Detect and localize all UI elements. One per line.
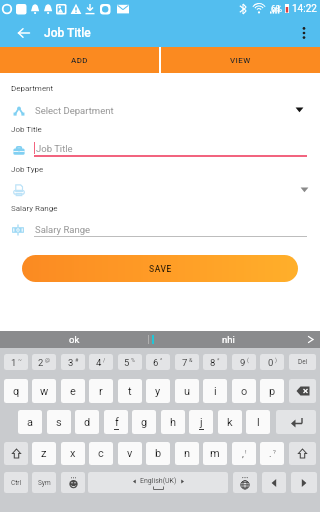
staticText: @	[45, 357, 50, 363]
staticText: ^	[160, 357, 163, 363]
button[interactable]: h	[161, 410, 185, 434]
button[interactable]	[0, 136, 320, 163]
button[interactable]: q	[4, 379, 28, 403]
staticText: 14:22	[292, 3, 317, 15]
button[interactable]: g	[132, 410, 156, 434]
button[interactable]: 0	[260, 354, 284, 370]
staticText: d	[84, 416, 91, 429]
button[interactable]: English(UK)	[88, 472, 228, 493]
button[interactable]: m	[203, 442, 227, 465]
button[interactable]: 9	[232, 354, 256, 370]
button[interactable]: p	[260, 379, 284, 403]
button[interactable]	[0, 176, 320, 203]
button[interactable]: Shift	[4, 442, 28, 465]
button[interactable]: i	[203, 379, 227, 403]
staticText: ok	[69, 334, 80, 345]
button[interactable]: 8	[203, 354, 227, 370]
button[interactable]: 3	[61, 354, 85, 370]
button[interactable]: y	[146, 379, 170, 403]
button[interactable]: d	[75, 410, 99, 434]
button[interactable]: VIEW	[161, 47, 320, 73]
staticText: v	[127, 447, 133, 460]
staticText: !	[245, 448, 247, 455]
button[interactable]: t	[118, 379, 142, 403]
staticText: s	[56, 416, 62, 429]
button[interactable]: Sym	[32, 472, 56, 493]
button[interactable]	[0, 215, 320, 242]
button[interactable]: b	[146, 442, 170, 465]
staticText: Job Title	[36, 143, 73, 154]
button[interactable]: x	[61, 442, 85, 465]
button[interactable]	[0, 96, 320, 124]
staticText: Ctrl	[11, 479, 22, 487]
button[interactable]: c	[89, 442, 113, 465]
staticText: 5	[124, 357, 130, 368]
staticText: 6%	[271, 4, 283, 14]
staticText: r	[99, 385, 103, 398]
button[interactable]: u	[175, 379, 199, 403]
button[interactable]: ,	[232, 442, 256, 465]
button[interactable]: .	[260, 442, 284, 465]
button[interactable]: ok	[0, 331, 148, 348]
staticText: e	[70, 385, 76, 398]
button[interactable]: Back	[11, 20, 37, 46]
staticText: a	[27, 416, 33, 429]
button[interactable]: SAVE	[22, 255, 298, 282]
button[interactable]: Shift	[289, 442, 316, 465]
button[interactable]: Move left	[262, 472, 286, 493]
button[interactable]: k	[218, 410, 242, 434]
button[interactable]: More suggestions	[300, 331, 320, 348]
button[interactable]: f	[104, 410, 128, 434]
button[interactable]: Change language	[233, 472, 257, 493]
staticText: n	[184, 447, 191, 460]
button[interactable]: ADD	[0, 47, 159, 73]
button[interactable]: Move right	[291, 472, 317, 493]
button[interactable]: Enter	[276, 410, 316, 434]
button[interactable]: j	[189, 410, 213, 434]
staticText: Salary Range	[35, 224, 91, 235]
staticText: t	[128, 385, 132, 398]
staticText: b	[155, 447, 162, 460]
staticText: ADD	[71, 56, 88, 65]
staticText: 7	[182, 357, 188, 368]
button[interactable]: w	[32, 379, 56, 403]
staticText: &	[189, 357, 193, 363]
button[interactable]: a	[18, 410, 42, 434]
button[interactable]: Backspace	[289, 379, 316, 403]
button[interactable]: 2	[32, 354, 56, 370]
button[interactable]: More options	[292, 21, 316, 45]
button[interactable]: z	[32, 442, 56, 465]
staticText: 4	[96, 357, 102, 368]
staticText: ,	[242, 448, 244, 459]
button[interactable]: e	[61, 379, 85, 403]
staticText: p	[269, 385, 276, 398]
button[interactable]: nhi	[156, 331, 300, 348]
button[interactable]: 6	[146, 354, 170, 370]
staticText: English(UK)	[140, 477, 177, 485]
button[interactable]: r	[89, 379, 113, 403]
button[interactable]: v	[118, 442, 142, 465]
staticText: 2	[38, 357, 44, 368]
staticText: 9	[240, 357, 246, 368]
staticText: l	[257, 416, 260, 429]
staticText: ~	[18, 357, 22, 363]
button[interactable]: Del	[289, 354, 316, 370]
button[interactable]: l	[246, 410, 270, 434]
button[interactable]: 5	[118, 354, 142, 370]
staticText: 3	[68, 357, 74, 368]
staticText: /	[103, 357, 106, 363]
button[interactable]: s	[47, 410, 71, 434]
button[interactable]: Ctrl	[4, 472, 28, 493]
button[interactable]: n	[175, 442, 199, 465]
staticText: u	[184, 385, 191, 398]
staticText: h	[170, 416, 177, 429]
staticText: Job Type	[11, 165, 44, 174]
button[interactable]: 1	[4, 354, 28, 370]
staticText: z	[41, 447, 47, 460]
button[interactable]: 4	[89, 354, 113, 370]
button[interactable]: 7	[175, 354, 199, 370]
staticText: .	[269, 448, 272, 459]
button[interactable]: Emoji	[61, 472, 85, 493]
staticText: Job Title	[44, 26, 91, 40]
button[interactable]: o	[232, 379, 256, 403]
